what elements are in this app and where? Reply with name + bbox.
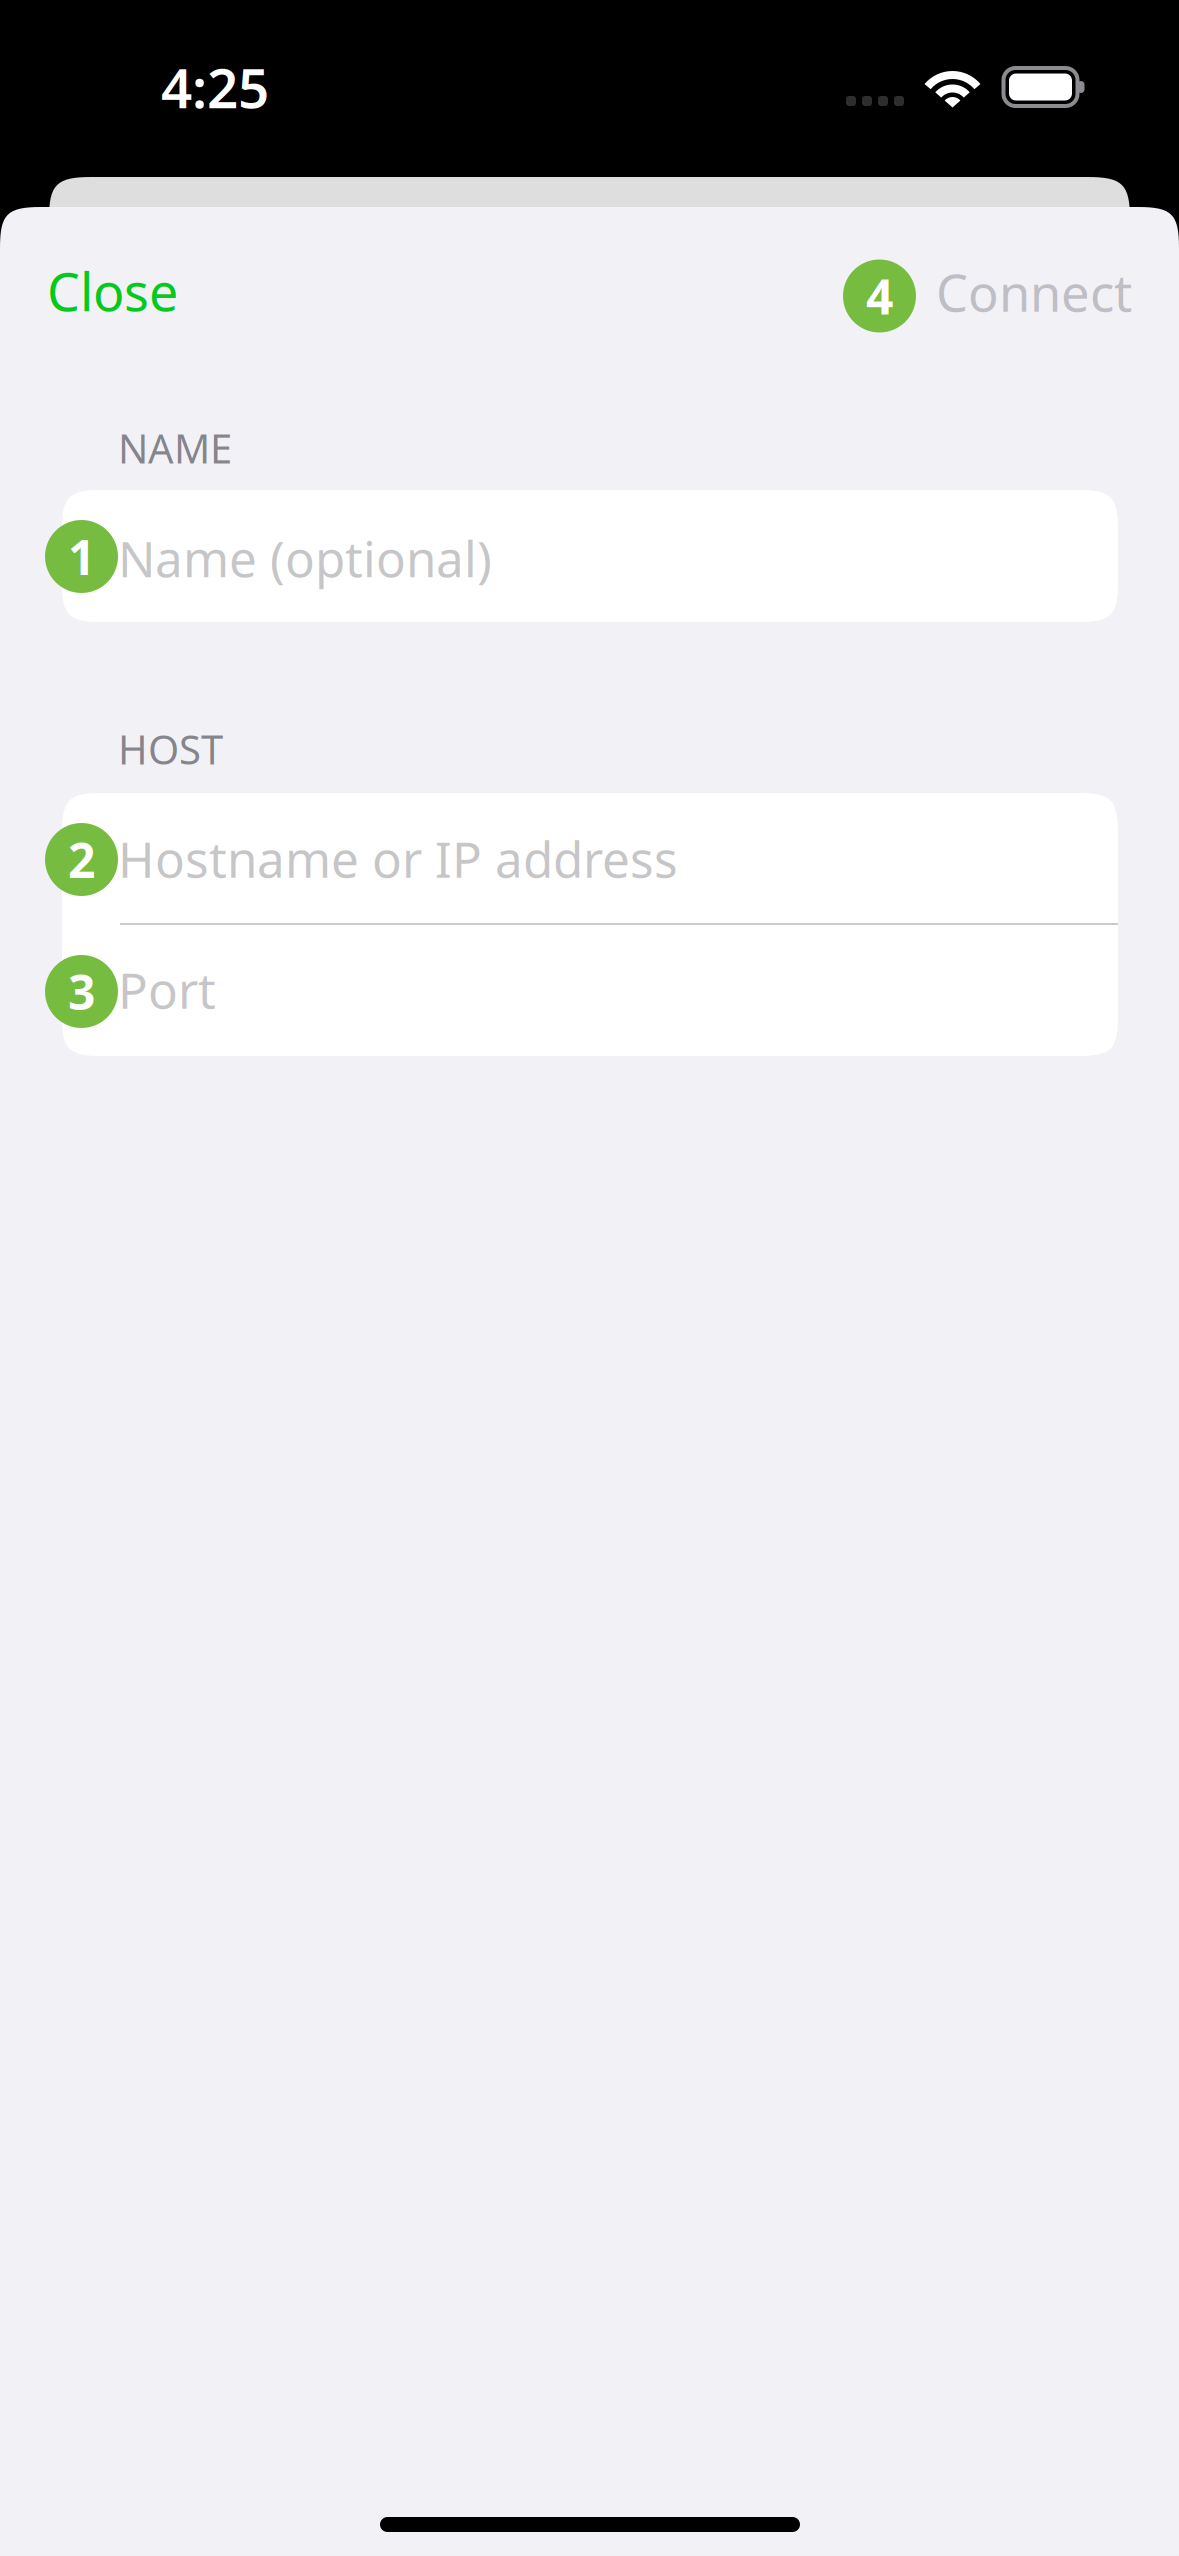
- button[interactable]: Hostname or IP address: [62, 793, 1118, 924]
- staticText: 4: [866, 264, 893, 328]
- button[interactable]: Port: [62, 925, 1118, 1056]
- staticText: NAME: [118, 421, 232, 474]
- staticText: 1: [68, 525, 95, 588]
- staticText: 4:25: [161, 51, 269, 123]
- staticText: HOST: [118, 722, 223, 775]
- staticText: Port: [118, 957, 216, 1022]
- button[interactable]: Close: [47, 251, 287, 331]
- staticText: Connect: [936, 258, 1132, 326]
- staticText: Name (optional): [118, 525, 492, 591]
- staticText: 2: [68, 828, 95, 891]
- staticText: Close: [47, 256, 178, 326]
- button[interactable]: Name (optional): [62, 490, 1118, 622]
- staticText: 3: [68, 960, 95, 1023]
- button[interactable]: Connect: [843, 256, 1139, 336]
- staticText: Hostname or IP address: [118, 826, 678, 891]
